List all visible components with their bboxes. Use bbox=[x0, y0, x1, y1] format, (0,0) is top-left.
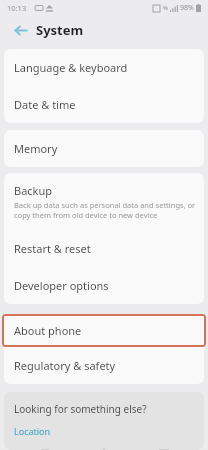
button[interactable]: Memory bbox=[4, 130, 204, 167]
button[interactable]: Date & time bbox=[4, 86, 204, 123]
button[interactable]: About phone bbox=[2, 314, 206, 347]
button[interactable]: Language & keyboard bbox=[4, 49, 204, 86]
button[interactable]: Location bbox=[14, 422, 51, 440]
button[interactable]: Developer options bbox=[4, 267, 204, 304]
staticText: % bbox=[163, 4, 168, 12]
staticText: 10:13 bbox=[7, 3, 27, 13]
staticText: Backup bbox=[14, 183, 53, 198]
staticText: Looking for something else? bbox=[14, 402, 147, 416]
staticText: About phone bbox=[14, 323, 82, 338]
staticText: Regulatory & safety bbox=[14, 358, 116, 373]
button[interactable]: Backup bbox=[4, 173, 204, 230]
staticText: Date & time bbox=[14, 97, 76, 112]
staticText: Language & keyboard bbox=[14, 60, 128, 75]
button[interactable]: Restart & reset bbox=[4, 230, 204, 267]
staticText: 98% bbox=[180, 3, 194, 13]
button[interactable]: Regulatory & safety bbox=[4, 347, 204, 384]
staticText: Restart & reset bbox=[14, 241, 91, 256]
staticText: Back up data such as personal data and s… bbox=[14, 200, 196, 220]
staticText: Developer options bbox=[14, 278, 109, 293]
staticText: Memory bbox=[14, 141, 58, 156]
staticText: Location bbox=[14, 425, 51, 437]
button[interactable]: Back bbox=[10, 20, 30, 40]
staticText: System bbox=[36, 21, 84, 39]
